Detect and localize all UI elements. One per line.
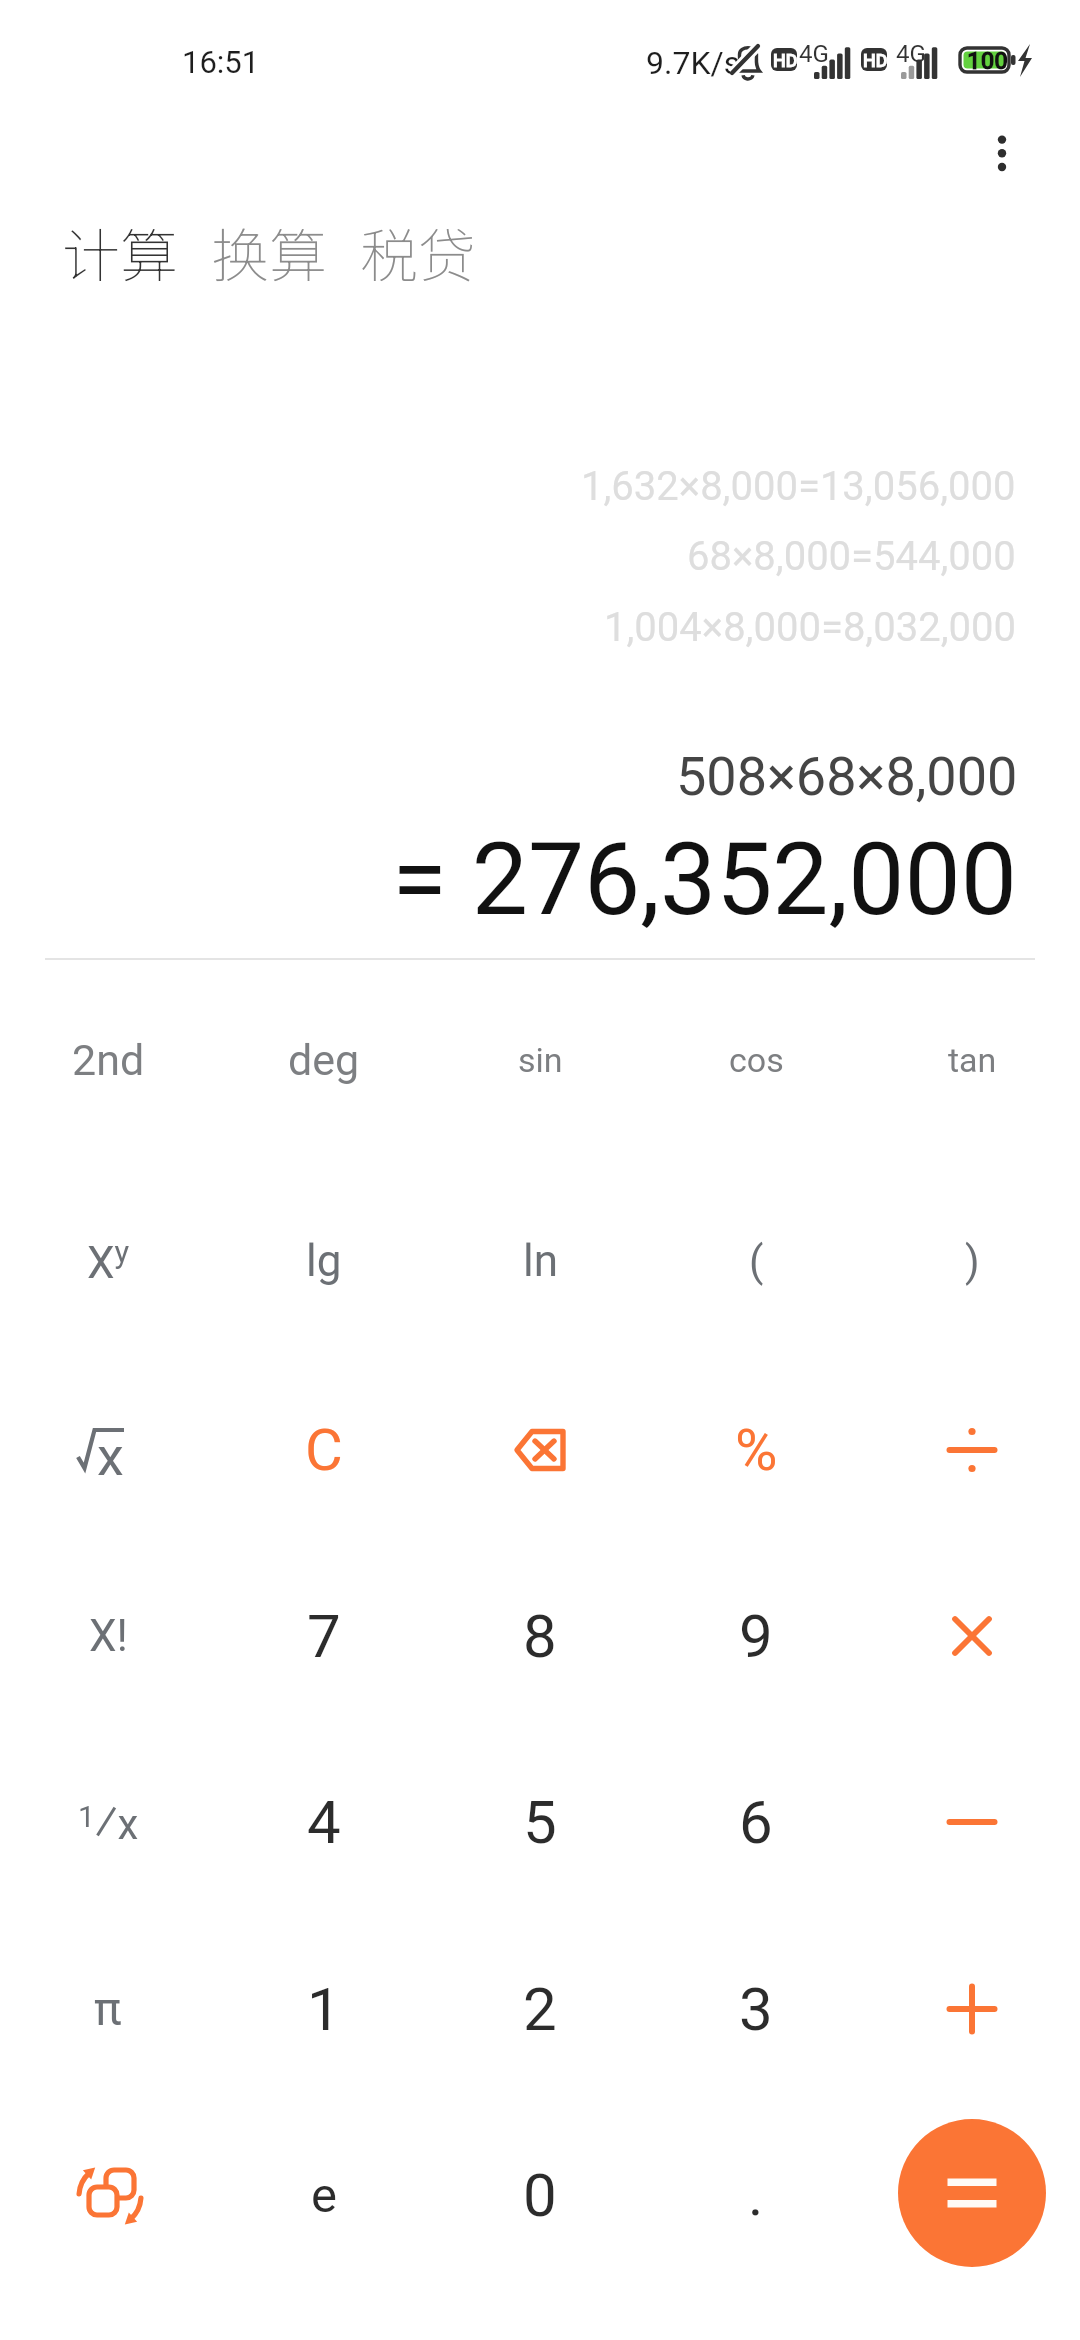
staticText: C <box>305 1416 343 1484</box>
button[interactable]: Multiply <box>872 1543 1072 1729</box>
button[interactable]: sin <box>440 967 640 1153</box>
staticText: 8 <box>523 1601 557 1671</box>
button[interactable]: deg <box>224 967 424 1153</box>
staticText: 换算 <box>211 210 328 294</box>
button[interactable]: π <box>8 1916 208 2102</box>
button[interactable]: Plus <box>872 1916 1072 2102</box>
button[interactable]: Divide <box>872 1357 1072 1543</box>
staticText: 1,004×8,000=8,032,000 <box>604 604 1016 651</box>
button[interactable]: Backspace <box>440 1357 640 1543</box>
staticText: = 276,352,000 <box>392 821 1017 938</box>
staticText: 税贷 <box>360 210 477 294</box>
staticText: 4G <box>896 40 926 68</box>
button[interactable]: ) <box>872 1168 1072 1354</box>
staticText: HD <box>863 50 888 71</box>
button[interactable]: 换算 <box>211 210 328 294</box>
button[interactable]: 7 <box>224 1543 424 1729</box>
staticText: 1,632×8,000=13,056,000 <box>581 463 1016 510</box>
button[interactable]: More options <box>955 106 1049 200</box>
staticText: 4G <box>799 40 829 68</box>
button[interactable]: cos <box>656 967 856 1153</box>
button[interactable]: C <box>224 1357 424 1543</box>
staticText: ) <box>965 1237 980 1286</box>
button[interactable]: X! <box>8 1543 208 1729</box>
staticText: ( <box>749 1237 764 1286</box>
staticText: 计算 <box>62 210 179 294</box>
staticText: 2nd <box>72 1035 145 1085</box>
button[interactable]: lg <box>224 1168 424 1354</box>
staticText: . <box>748 2161 764 2229</box>
button[interactable]: Equals <box>872 2102 1072 2288</box>
staticText: π <box>94 1982 122 2036</box>
staticText: 2 <box>523 1974 557 2044</box>
staticText: tan <box>948 1040 997 1080</box>
staticText: 100 <box>967 47 1008 75</box>
button[interactable]: 4 <box>224 1729 424 1915</box>
staticText: 9.7K/s <box>646 44 741 82</box>
staticText: 6 <box>739 1787 773 1857</box>
staticText: 9 <box>739 1601 773 1671</box>
staticText: 7 <box>307 1601 341 1671</box>
button[interactable]: Square root <box>8 1357 208 1543</box>
staticText: 1⁄x <box>78 1793 139 1852</box>
button[interactable]: 1 <box>224 1916 424 2102</box>
button[interactable]: ( <box>656 1168 856 1354</box>
button[interactable]: Convert <box>8 2102 208 2288</box>
button[interactable]: ln <box>440 1168 640 1354</box>
button[interactable]: tan <box>872 967 1072 1153</box>
button[interactable]: Minus <box>872 1729 1072 1915</box>
staticText: cos <box>729 1040 784 1080</box>
staticText: ln <box>523 1235 558 1287</box>
button[interactable]: 5 <box>440 1729 640 1915</box>
staticText: 4 <box>307 1787 341 1857</box>
button[interactable]: 2 <box>440 1916 640 2102</box>
staticText: deg <box>288 1035 360 1085</box>
button[interactable]: 税贷 <box>360 210 477 294</box>
staticText: lg <box>306 1235 342 1287</box>
button[interactable]: . <box>656 2102 856 2288</box>
staticText: x <box>97 1425 124 1488</box>
button[interactable]: 3 <box>656 1916 856 2102</box>
staticText: X! <box>89 1610 128 1662</box>
staticText: 0 <box>523 2160 557 2230</box>
staticText: 508×68×8,000 <box>676 745 1018 808</box>
staticText: Xy <box>87 1234 130 1288</box>
button[interactable]: e <box>224 2102 424 2288</box>
staticText: 1 <box>307 1974 341 2044</box>
staticText: 3 <box>739 1974 773 2044</box>
staticText: % <box>735 1416 778 1484</box>
button[interactable]: 6 <box>656 1729 856 1915</box>
button[interactable]: One over x <box>8 1729 208 1915</box>
button[interactable]: 9 <box>656 1543 856 1729</box>
staticText: 16:51 <box>182 44 260 80</box>
staticText: e <box>311 2167 337 2224</box>
button[interactable]: % <box>656 1357 856 1543</box>
button[interactable]: Equals <box>898 2119 1046 2267</box>
button[interactable]: 2nd <box>8 967 208 1153</box>
staticText: 68×8,000=544,000 <box>687 533 1016 580</box>
button[interactable]: 0 <box>440 2102 640 2288</box>
staticText: sin <box>518 1040 563 1080</box>
staticText: HD <box>773 50 798 71</box>
button[interactable]: 8 <box>440 1543 640 1729</box>
staticText: 5 <box>523 1787 557 1857</box>
button[interactable]: 计算 <box>62 210 179 294</box>
button[interactable]: x to the power of y <box>8 1168 208 1354</box>
